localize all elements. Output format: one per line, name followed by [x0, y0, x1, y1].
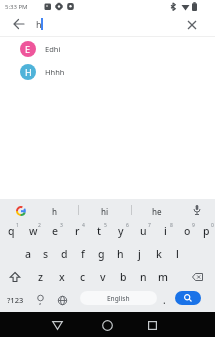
staticText: hi [101, 206, 109, 217]
staticText: h [36, 18, 42, 30]
staticText: ?123 [7, 295, 24, 305]
button[interactable]: . [158, 288, 170, 312]
staticText: Hhhh [45, 67, 65, 77]
button[interactable]: l [168, 242, 187, 265]
button[interactable]: s [37, 242, 55, 265]
button[interactable]: H [0, 60, 215, 83]
staticText: j [138, 247, 141, 261]
staticText: r [75, 224, 80, 238]
staticText: t [97, 224, 102, 238]
button[interactable] [175, 291, 201, 305]
staticText: h [52, 206, 58, 217]
staticText: n [140, 270, 147, 284]
button[interactable]: a [19, 242, 37, 265]
button[interactable]: q [0, 219, 22, 242]
button[interactable] [13, 203, 29, 219]
button[interactable] [0, 265, 30, 288]
button[interactable]: u [132, 219, 154, 242]
button[interactable]: g [92, 242, 111, 265]
button[interactable]: ?123 [1, 288, 29, 312]
staticText: 0 [211, 222, 214, 229]
button[interactable]: he [142, 201, 172, 221]
button[interactable]: w [22, 219, 44, 242]
button[interactable]: r [66, 219, 88, 242]
staticText: a [25, 247, 32, 261]
button[interactable]: m [153, 265, 173, 288]
button[interactable] [53, 288, 71, 312]
staticText: e [52, 224, 59, 238]
staticText: m [158, 270, 168, 284]
button[interactable] [173, 265, 215, 288]
button[interactable]: j [130, 242, 149, 265]
staticText: E [25, 43, 31, 55]
button[interactable]: h [111, 242, 130, 265]
staticText: b [120, 270, 127, 284]
staticText: y [118, 224, 124, 238]
staticText: 5:33 PM [5, 3, 28, 11]
button[interactable]: y [110, 219, 132, 242]
button[interactable]: n [133, 265, 153, 288]
button[interactable] [33, 288, 48, 312]
staticText: 7 [148, 222, 151, 229]
button[interactable]: t [88, 219, 110, 242]
button[interactable] [181, 14, 203, 36]
button[interactable]: d [55, 242, 73, 265]
staticText: s [43, 247, 49, 261]
button[interactable] [96, 314, 118, 336]
staticText: i [164, 224, 167, 238]
staticText: x [59, 270, 65, 284]
button[interactable]: v [93, 265, 113, 288]
staticText: 5 [104, 222, 107, 229]
staticText: 4 [82, 222, 85, 229]
staticText: v [100, 270, 106, 284]
button[interactable]: c [72, 265, 93, 288]
button[interactable] [8, 13, 29, 34]
staticText: 2 [38, 222, 41, 229]
button[interactable]: e [44, 219, 66, 242]
button[interactable]: h [40, 201, 70, 221]
staticText: 6 [126, 222, 129, 229]
staticText: f [81, 247, 85, 261]
button[interactable]: b [113, 265, 133, 288]
staticText: 1 [16, 222, 19, 229]
staticText: d [61, 247, 68, 261]
staticText: p [203, 224, 210, 238]
staticText: English [107, 294, 130, 303]
button[interactable] [141, 314, 163, 336]
button[interactable] [189, 202, 205, 218]
staticText: 3 [60, 222, 63, 229]
button[interactable]: i [154, 219, 176, 242]
staticText: h [117, 247, 124, 261]
staticText: w [29, 224, 38, 238]
staticText: c [80, 270, 86, 284]
staticText: u [140, 224, 147, 238]
staticText: 9 [192, 222, 195, 229]
staticText: z [38, 270, 44, 284]
button[interactable]: English [80, 291, 157, 305]
staticText: g [98, 247, 105, 261]
button[interactable]: k [149, 242, 168, 265]
button[interactable]: z [30, 265, 51, 288]
staticText: H [25, 66, 32, 78]
button[interactable]: hi [90, 201, 120, 221]
button[interactable]: E [0, 37, 215, 60]
button[interactable]: o [176, 219, 198, 242]
staticText: l [176, 247, 179, 261]
staticText: Edhi [45, 44, 61, 54]
staticText: 8 [170, 222, 173, 229]
button[interactable]: f [73, 242, 92, 265]
button[interactable] [46, 314, 68, 336]
staticText: he [152, 206, 162, 217]
staticText: q [8, 224, 15, 238]
button[interactable]: p [198, 219, 215, 242]
staticText: . [163, 293, 166, 307]
staticText: o [184, 224, 191, 238]
staticText: k [156, 247, 162, 261]
button[interactable]: x [51, 265, 72, 288]
